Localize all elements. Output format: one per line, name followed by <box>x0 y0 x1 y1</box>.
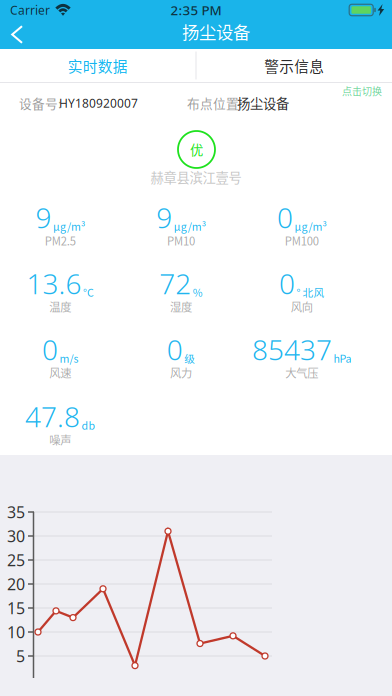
staticText: 警示信息 <box>264 55 324 76</box>
staticText: 0 <box>167 331 183 368</box>
button[interactable]: 实时数据 <box>0 49 195 82</box>
staticText: 大气压 <box>285 364 318 381</box>
staticText: 点击切换 <box>342 84 382 98</box>
button[interactable]: 点击切换 <box>322 84 382 98</box>
staticText: 9 <box>156 199 172 236</box>
staticText: HY180920007 <box>59 95 138 111</box>
staticText: 风速 <box>49 364 71 381</box>
staticText: Carrier <box>10 2 50 18</box>
staticText: 10 <box>7 621 25 643</box>
staticText: 温度 <box>49 298 71 315</box>
staticText: % <box>193 284 203 300</box>
staticText: 扬尘设备 <box>237 93 289 113</box>
staticText: 0 <box>42 331 58 368</box>
staticText: 设备号: <box>19 94 62 112</box>
staticText: 2:35 PM <box>170 1 221 19</box>
staticText: 20 <box>7 573 25 595</box>
staticText: 布点位置: <box>187 94 243 112</box>
staticText: 噪声 <box>49 431 71 448</box>
staticText: 13.6 <box>27 265 82 302</box>
staticText: 72 <box>159 265 191 302</box>
staticText: 赫章县滨江壹号 <box>150 167 241 187</box>
staticText: 实时数据 <box>68 55 128 76</box>
staticText: m/s <box>60 350 79 366</box>
staticText: 优 <box>190 140 203 159</box>
staticText: 级 <box>184 350 195 366</box>
staticText: 30 <box>7 525 25 547</box>
staticText: μg/m³ <box>53 218 85 234</box>
staticText: ° 北风 <box>296 284 324 300</box>
staticText: 风向 <box>291 298 313 315</box>
staticText: PM10 <box>167 232 195 249</box>
staticText: 风力 <box>170 364 192 381</box>
staticText: 15 <box>7 597 25 619</box>
staticText: 25 <box>7 549 25 571</box>
staticText: °C <box>83 284 94 300</box>
button[interactable]: Back <box>0 20 34 49</box>
staticText: 湿度 <box>170 298 192 315</box>
button[interactable]: 警示信息 <box>196 49 392 82</box>
staticText: hPa <box>333 350 351 366</box>
staticText: 35 <box>7 501 25 523</box>
staticText: 47.8 <box>25 398 80 435</box>
staticText: μg/m³ <box>294 218 326 234</box>
staticText: db <box>82 417 96 433</box>
staticText: PM2.5 <box>45 232 76 249</box>
staticText: 9 <box>36 199 52 236</box>
staticText: μg/m³ <box>174 218 206 234</box>
staticText: 5 <box>16 645 25 667</box>
staticText: 0 <box>277 199 293 236</box>
staticText: 扬尘设备 <box>182 19 250 44</box>
staticText: 0 <box>279 265 295 302</box>
staticText: PM100 <box>285 232 319 249</box>
staticText: 85437 <box>252 331 332 368</box>
